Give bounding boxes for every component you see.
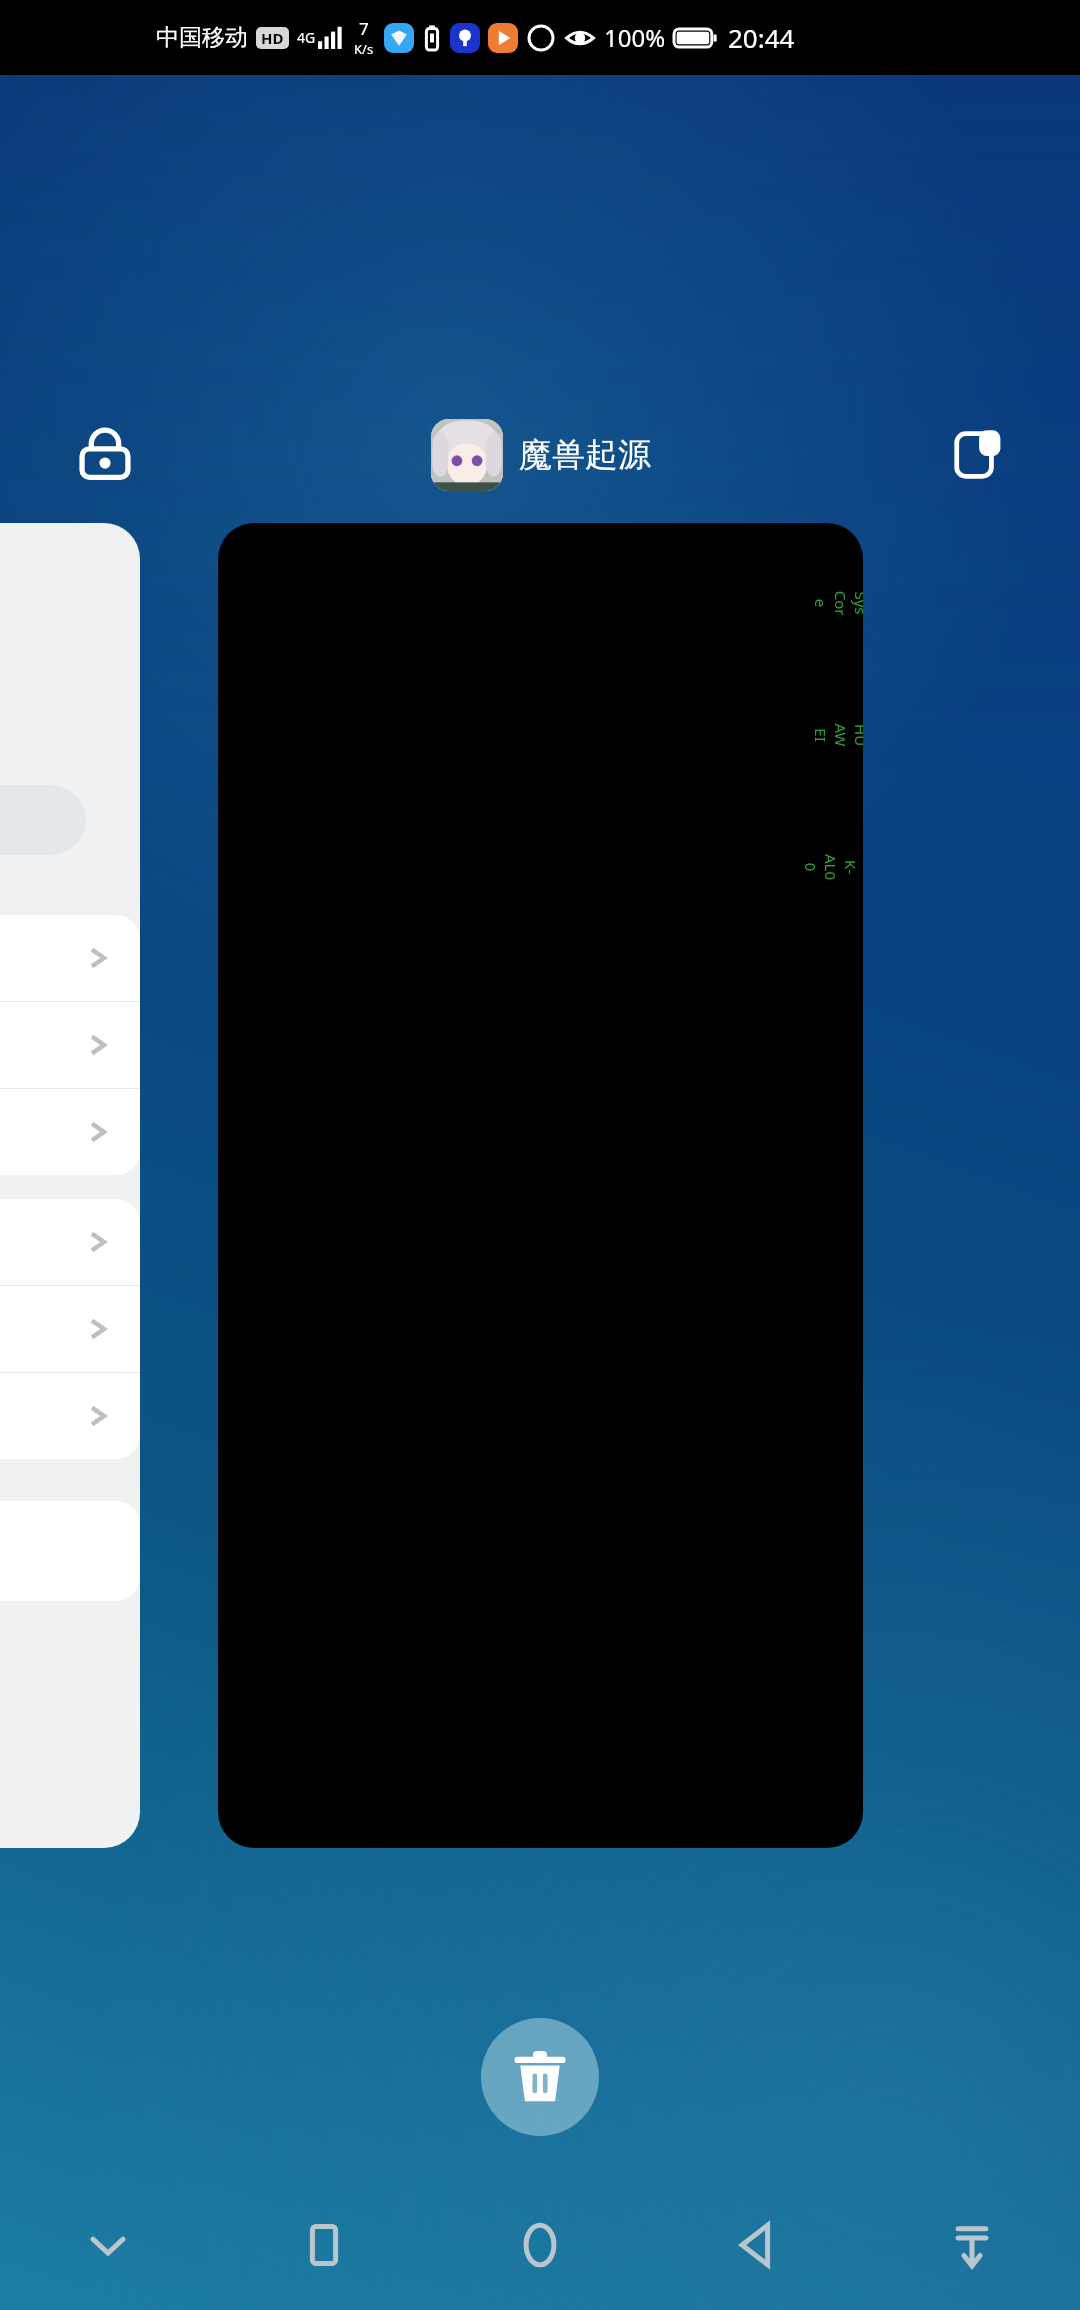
button[interactable] [0, 1199, 140, 1285]
button[interactable]: Clear all [481, 2018, 599, 2136]
button[interactable] [0, 1373, 140, 1459]
button[interactable] [0, 915, 140, 1001]
button[interactable]: Recents [216, 2180, 432, 2310]
button[interactable]: Home [432, 2180, 648, 2310]
staticText: K/s [354, 40, 374, 58]
button[interactable]: Collapse [0, 2180, 216, 2310]
staticText: 20:44 [728, 20, 795, 55]
button[interactable]: 停止 [0, 523, 140, 1848]
staticText: 魔兽起源 [519, 434, 651, 476]
button[interactable]: Lock app [55, 405, 155, 505]
button[interactable] [0, 1089, 140, 1175]
button[interactable]: Sys Core [218, 523, 863, 1848]
staticText: 中国移动 [156, 23, 248, 52]
staticText: HD [261, 28, 284, 48]
button[interactable] [0, 1002, 140, 1088]
staticText: 100% [604, 21, 666, 54]
button[interactable] [0, 1286, 140, 1372]
button[interactable]: Back [648, 2180, 864, 2310]
button[interactable]: Notifications [864, 2180, 1080, 2310]
staticText: 7 [359, 17, 369, 40]
button[interactable]: 魔兽起源 [431, 419, 651, 491]
staticText: HUAWEI [811, 721, 863, 749]
button[interactable]: Split screen [928, 405, 1028, 505]
staticText: 4G [297, 28, 316, 47]
staticText: GLK-AL00 [801, 853, 863, 881]
staticText: Sys Core [811, 589, 863, 617]
